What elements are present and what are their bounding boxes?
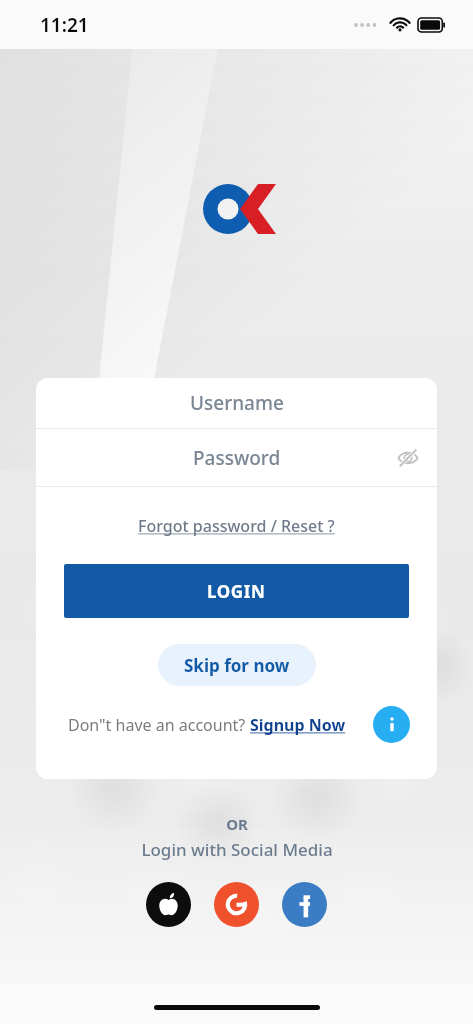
staticText: Username	[190, 390, 284, 416]
button[interactable]: Information	[373, 706, 410, 743]
staticText: LOGIN	[207, 580, 266, 603]
staticText: Forgot password / Reset ?	[138, 515, 335, 537]
button[interactable]: Forgot password / Reset ?	[132, 511, 341, 541]
staticText: Skip for now	[184, 654, 290, 677]
button[interactable]: Show password	[390, 440, 426, 476]
staticText: 11:21	[40, 12, 89, 38]
button[interactable]: Sign in with Facebook	[282, 882, 327, 927]
button[interactable]: Signup Now	[250, 714, 346, 736]
staticText: Login with Social Media	[141, 838, 333, 861]
staticText: Don"t have an account?	[68, 714, 250, 736]
button[interactable]: LOGIN	[64, 564, 409, 618]
staticText: Signup Now	[250, 714, 346, 736]
staticText: OR	[226, 814, 248, 834]
button[interactable]: Sign in with Google	[214, 882, 259, 927]
button[interactable]: Sign in with Apple	[146, 882, 191, 927]
button[interactable]: Skip for now	[158, 644, 316, 686]
button[interactable]: Username	[36, 378, 437, 428]
staticText: Password	[193, 445, 281, 471]
button[interactable]: Password	[36, 429, 437, 486]
